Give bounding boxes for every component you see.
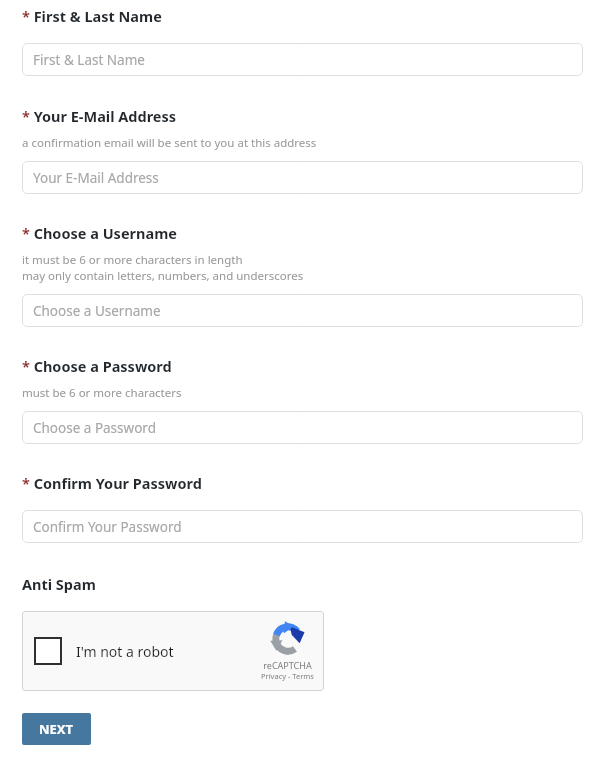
button[interactable]: NEXT xyxy=(22,713,91,745)
staticText: Privacy - Terms xyxy=(261,671,314,681)
staticText: * Choose a Username xyxy=(22,223,177,243)
staticText: may only contain letters, numbers, and u… xyxy=(22,268,304,284)
staticText: reCAPTCHA xyxy=(263,659,312,671)
staticText: I'm not a robot xyxy=(76,642,174,661)
staticText: a confirmation email will be sent to you… xyxy=(22,135,317,151)
button[interactable]: Your E-Mail Address xyxy=(22,161,583,194)
button[interactable]: Confirm Your Password xyxy=(22,510,583,543)
staticText: * Choose a Password xyxy=(22,356,172,376)
staticText: NEXT xyxy=(39,720,74,738)
button[interactable]: I'm not a robot checkbox xyxy=(34,637,62,665)
staticText: Choose a Password xyxy=(33,419,156,437)
staticText: Choose a Username xyxy=(33,302,161,320)
staticText: it must be 6 or more characters in lengt… xyxy=(22,252,243,268)
button[interactable]: Choose a Password xyxy=(22,411,583,444)
staticText: Confirm Your Password xyxy=(33,518,182,536)
button[interactable]: First & Last Name xyxy=(22,43,583,76)
staticText: * Confirm Your Password xyxy=(22,473,202,493)
staticText: First & Last Name xyxy=(33,51,145,69)
staticText: must be 6 or more characters xyxy=(22,385,182,401)
staticText: * Your E-Mail Address xyxy=(22,106,177,126)
staticText: * First & Last Name xyxy=(22,6,162,26)
staticText: Anti Spam xyxy=(22,574,96,594)
button[interactable]: Choose a Username xyxy=(22,294,583,327)
staticText: Your E-Mail Address xyxy=(33,169,159,187)
